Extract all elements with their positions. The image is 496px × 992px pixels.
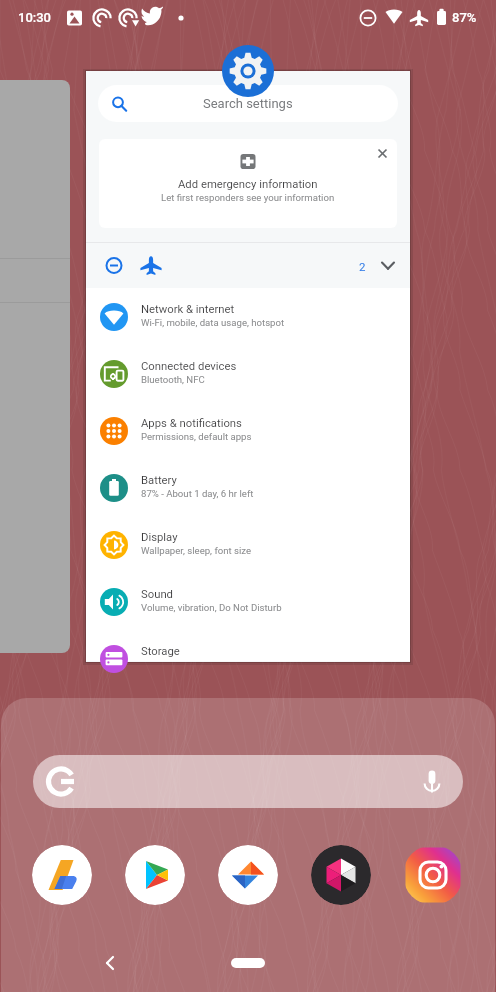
staticText: 10:30 (18, 10, 52, 25)
staticText: Bluetooth, NFC (141, 374, 205, 385)
staticText: 87% - About 1 day, 6 hr left (141, 488, 254, 499)
button[interactable]: Battery (86, 459, 410, 516)
button[interactable]: Add emergency information (99, 139, 397, 228)
staticText: 2 (359, 260, 366, 273)
button[interactable]: Back (96, 949, 124, 977)
button[interactable]: Home (231, 958, 265, 968)
staticText: Connected devices (141, 360, 237, 373)
button[interactable]: Instagram (403, 845, 463, 905)
button[interactable]: Sound (86, 573, 410, 630)
button[interactable]: Display (86, 516, 410, 573)
staticText: Wallpaper, sleep, font size (141, 545, 252, 556)
button[interactable]: Drive (218, 845, 278, 905)
button[interactable]: Play Store (125, 845, 185, 905)
staticText: Display (141, 531, 178, 544)
staticText: Apps & notifications (141, 417, 242, 430)
button[interactable]: 2 (86, 243, 410, 288)
staticText: Add emergency information (178, 178, 318, 191)
button[interactable]: Search settings (98, 85, 398, 122)
button[interactable]: Storage (86, 630, 410, 661)
staticText: Network & internet (141, 303, 235, 316)
staticText: Permissions, default apps (141, 431, 252, 442)
button[interactable]: Network & internet (86, 288, 410, 345)
staticText: Sound (141, 588, 173, 601)
staticText: Storage (141, 645, 180, 658)
button[interactable]: Connected devices (86, 345, 410, 402)
button[interactable]: Search (33, 755, 463, 808)
staticText: Search settings (203, 96, 293, 111)
button[interactable]: Ads (32, 845, 92, 905)
staticText: Let first responders see your informatio… (161, 192, 335, 203)
staticText: 87% (452, 10, 477, 25)
button[interactable]: Gallery (311, 845, 371, 905)
button[interactable]: Settings (222, 45, 274, 97)
button[interactable]: Dismiss (369, 140, 396, 167)
staticText: Wi-Fi, mobile, data usage, hotspot (141, 317, 285, 328)
staticText: Volume, vibration, Do Not Disturb (141, 602, 282, 613)
staticText: Battery (141, 474, 177, 487)
button[interactable]: Apps & notifications (86, 402, 410, 459)
